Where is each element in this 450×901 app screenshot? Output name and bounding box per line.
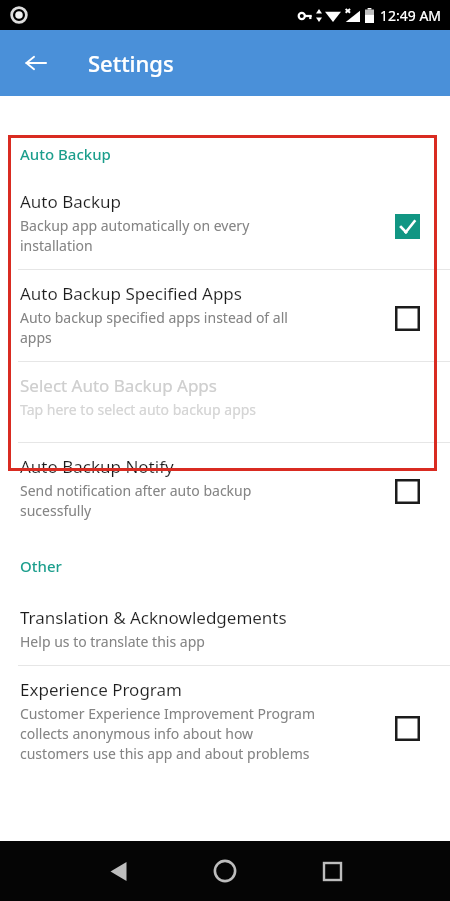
button[interactable]: Auto Backup Notify — [0, 443, 450, 534]
staticText: Other — [20, 556, 450, 576]
button[interactable]: Back — [96, 849, 140, 893]
staticText: Customer Experience Improvement Program … — [20, 704, 316, 763]
button[interactable]: Unchecked — [395, 479, 420, 504]
staticText: Experience Program — [20, 678, 182, 701]
staticText: Help us to translate this app — [20, 632, 205, 651]
button[interactable]: Recent apps — [310, 849, 354, 893]
staticText: 12:49 AM — [380, 6, 442, 25]
button[interactable]: Checked — [395, 214, 420, 239]
staticText: Settings — [88, 48, 174, 78]
staticText: Auto Backup — [20, 190, 121, 213]
staticText: Send notification after auto backup suce… — [20, 481, 252, 520]
staticText: Translation & Acknowledgements — [20, 606, 287, 629]
staticText: Backup app automatically on every instal… — [20, 216, 250, 255]
button[interactable]: Unchecked — [395, 306, 420, 331]
staticText: Auto Backup Notify — [20, 455, 174, 478]
button[interactable]: Home — [203, 849, 247, 893]
button[interactable]: Translation & Acknowledgements — [0, 594, 450, 665]
button[interactable]: Back — [16, 43, 56, 83]
button[interactable]: Select Auto Backup Apps — [0, 362, 450, 433]
staticText: Auto backup specified apps instead of al… — [20, 308, 288, 347]
staticText: Tap here to select auto backup apps — [20, 400, 257, 419]
button[interactable]: Unchecked — [395, 716, 420, 741]
staticText: Select Auto Backup Apps — [20, 374, 217, 397]
staticText: Auto Backup Specified Apps — [20, 282, 242, 305]
button[interactable]: Experience Program — [0, 666, 450, 777]
button[interactable]: Auto Backup — [0, 178, 450, 269]
button[interactable]: Auto Backup Specified Apps — [0, 270, 450, 361]
staticText: Auto Backup — [20, 144, 450, 164]
